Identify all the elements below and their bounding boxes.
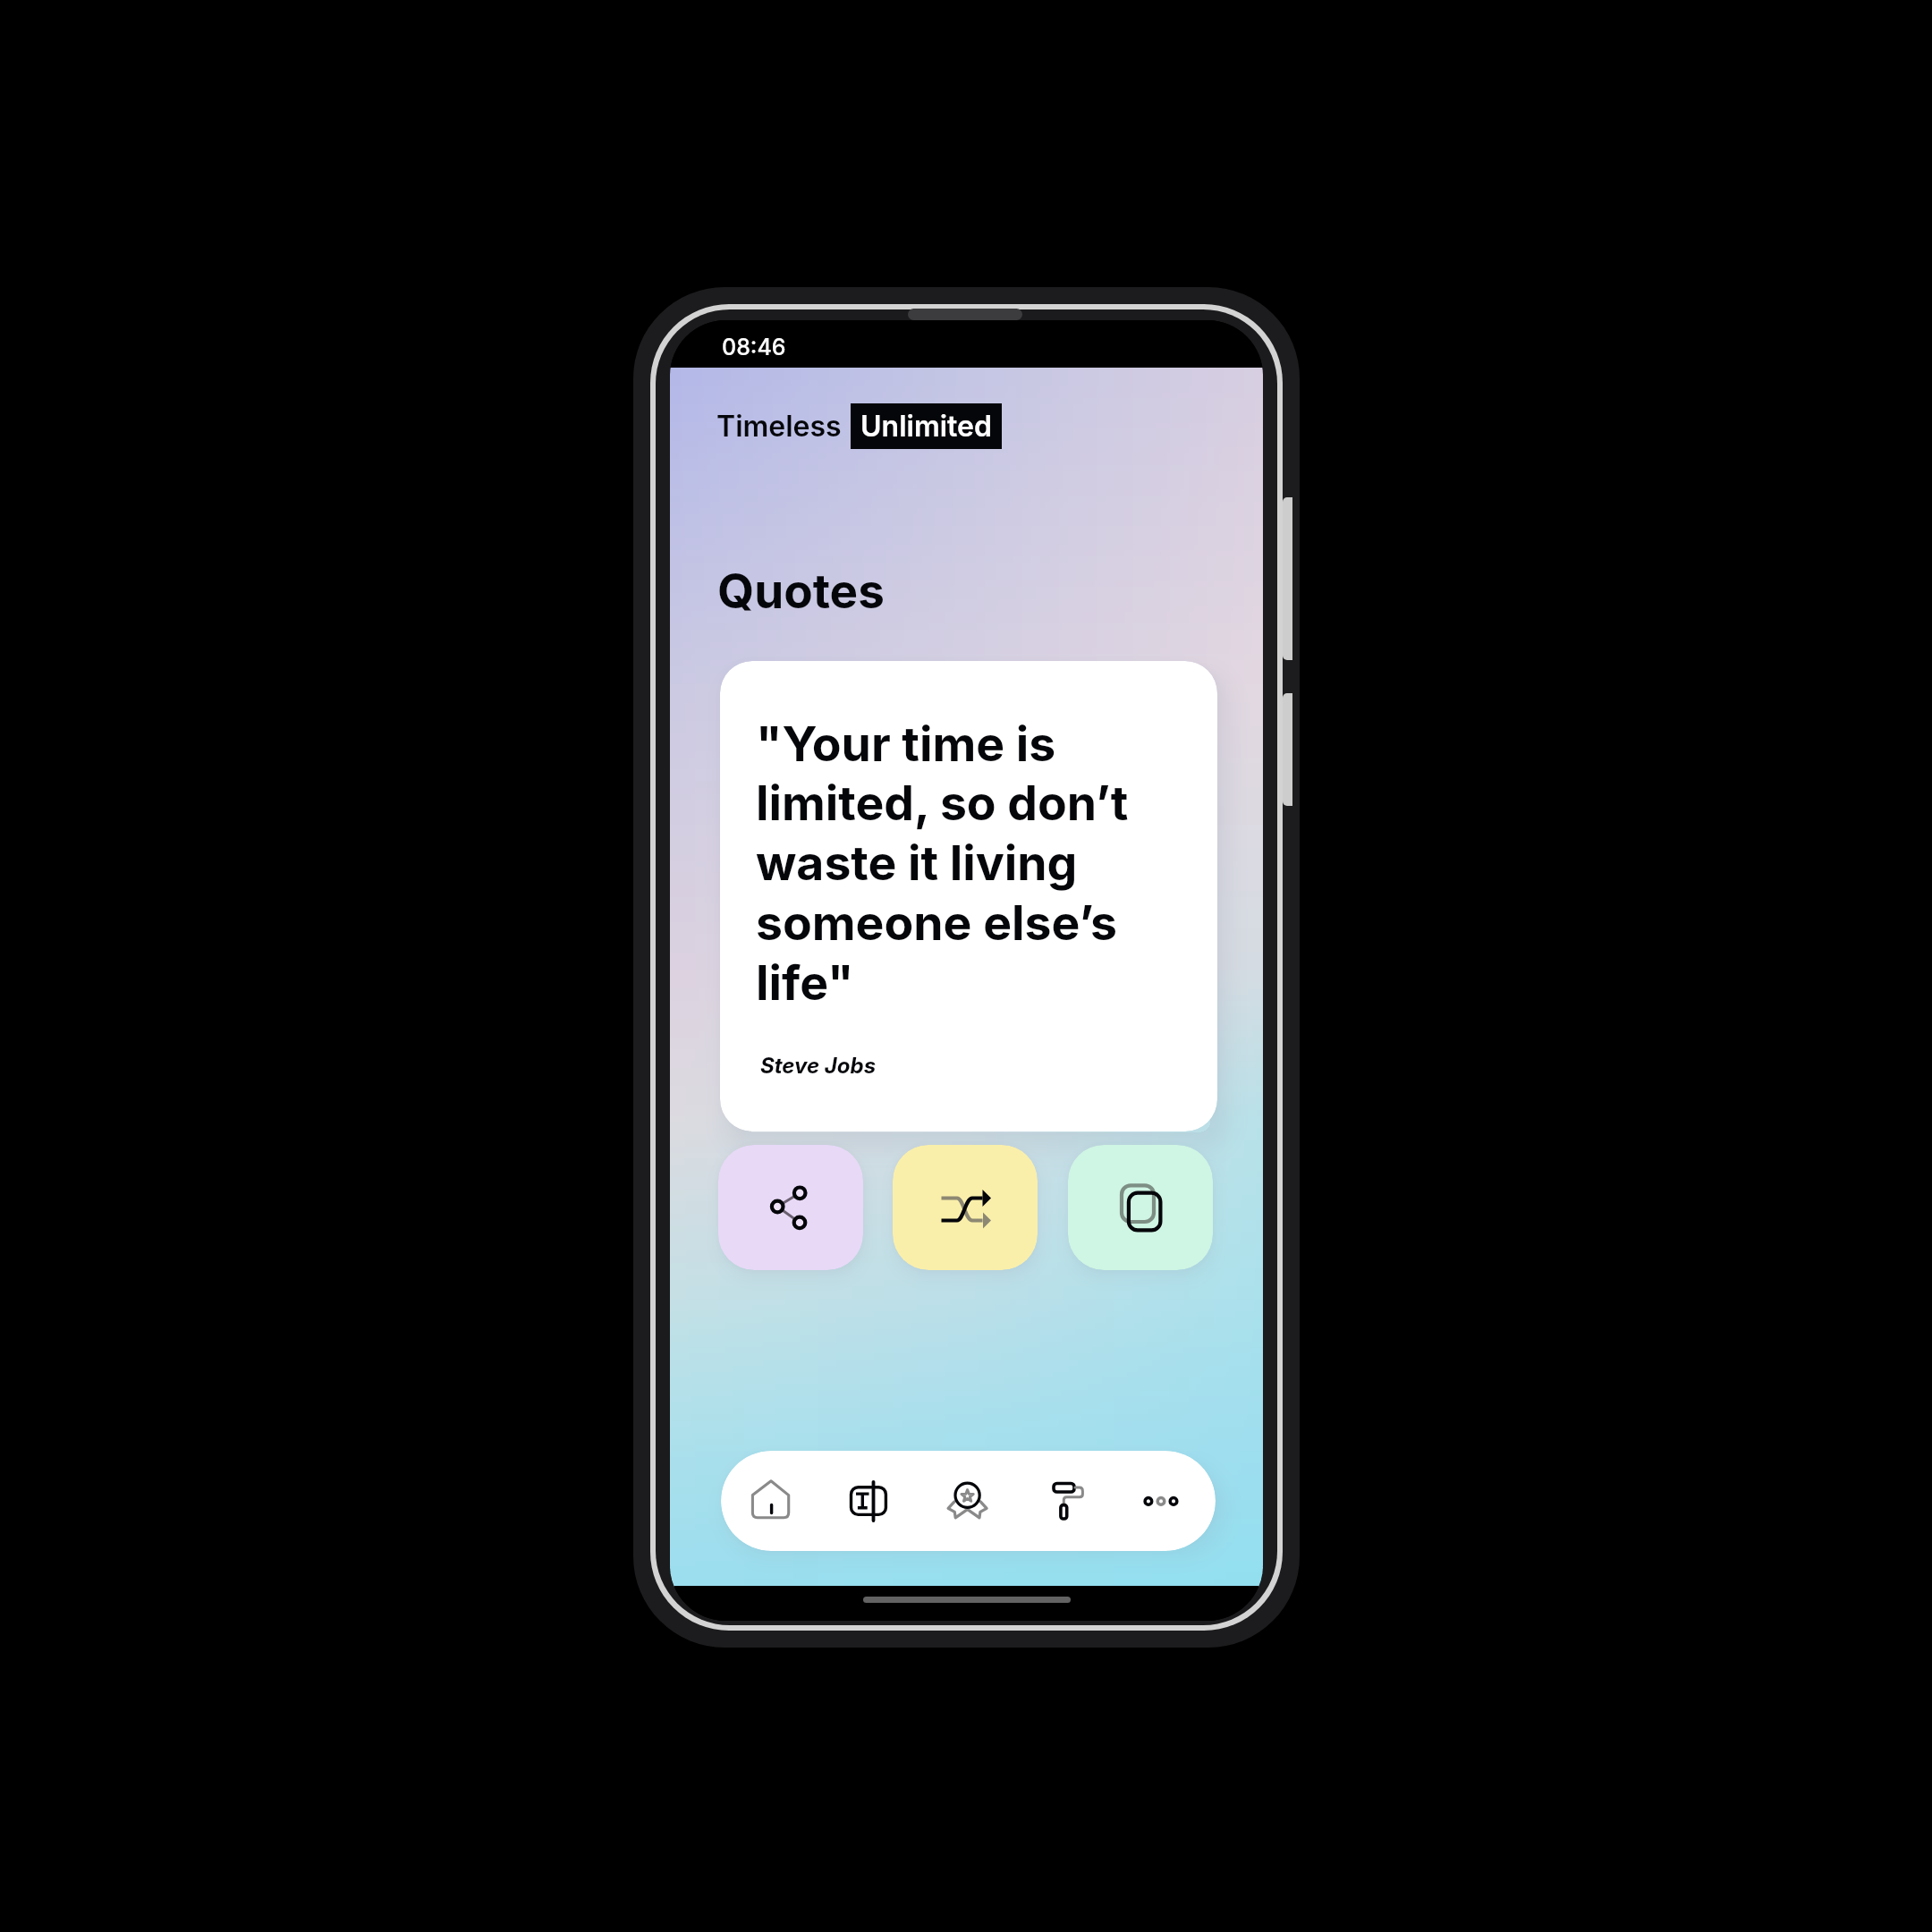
- button[interactable]: "Your time is limited, so don’t waste it…: [720, 661, 1217, 1131]
- button[interactable]: Typography: [819, 1451, 917, 1551]
- button[interactable]: Copy: [1068, 1145, 1213, 1270]
- staticText: Steve Jobs: [760, 1053, 877, 1079]
- button[interactable]: Shuffle: [893, 1145, 1038, 1270]
- staticText: "Your time is limited, so don’t waste it…: [756, 715, 1193, 1012]
- staticText: Quotes: [717, 563, 885, 620]
- button[interactable]: Themes: [1014, 1451, 1112, 1551]
- staticText: Unlimited: [860, 409, 992, 444]
- button[interactable]: Awards: [917, 1451, 1014, 1551]
- button[interactable]: Share: [718, 1145, 863, 1270]
- button[interactable]: Home: [722, 1451, 819, 1551]
- staticText: Timeless: [716, 409, 842, 444]
- staticText: 08:46: [722, 334, 786, 360]
- button[interactable]: More: [1112, 1451, 1209, 1551]
